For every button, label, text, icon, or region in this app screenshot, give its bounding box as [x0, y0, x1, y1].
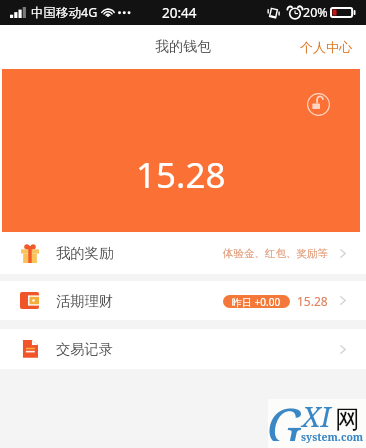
staticText: XI: [302, 397, 331, 435]
staticText: 中国移动4G: [31, 4, 98, 21]
staticText: 昨日 +0.00: [232, 295, 281, 308]
staticText: 我的奖励: [56, 244, 114, 262]
staticText: G: [267, 392, 302, 441]
button[interactable]: 交易记录: [0, 329, 366, 369]
button[interactable]: 我的奖励: [0, 232, 366, 274]
staticText: 网: [335, 404, 360, 435]
staticText: 我的钱包: [155, 38, 211, 56]
staticText: 20:44: [162, 4, 197, 22]
button[interactable]: 个人中心: [286, 28, 366, 66]
staticText: 交易记录: [56, 340, 114, 358]
staticText: 活期理财: [56, 292, 114, 310]
staticText: 体验金、红包、奖励等: [223, 247, 328, 260]
staticText: 20%: [303, 4, 328, 21]
button[interactable]: Unlock wallet: [307, 93, 330, 116]
staticText: 15.28: [297, 293, 328, 309]
button[interactable]: 活期理财: [0, 281, 366, 320]
staticText: 个人中心: [300, 39, 352, 55]
button[interactable]: 15.28: [2, 69, 360, 232]
staticText: system.com: [301, 430, 364, 444]
staticText: 15.28: [136, 151, 226, 199]
